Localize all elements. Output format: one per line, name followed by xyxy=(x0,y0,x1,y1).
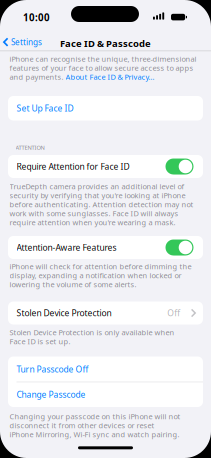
staticText: lowering the volume of some alerts. xyxy=(9,279,136,289)
button[interactable]: Require Attention for Face ID xyxy=(165,158,193,174)
staticText: features of your face to allow secure ac… xyxy=(9,63,193,73)
staticText: work with some sunglasses. Face ID will … xyxy=(9,208,178,218)
staticText: Change Passcode xyxy=(16,389,85,400)
staticText: before authenticating. Attention detecti… xyxy=(9,199,193,209)
staticText: Face ID is set up. xyxy=(9,336,70,346)
staticText: About Face ID & Privacy... xyxy=(65,72,154,82)
staticText: iPhone can recognise the unique, three-d… xyxy=(9,54,196,64)
staticText: Require Attention for Face ID xyxy=(16,161,129,172)
button[interactable]: Attention-Aware Features xyxy=(165,239,193,255)
staticText: Face ID & Passcode xyxy=(60,37,151,50)
staticText: Changing your passcode on this iPhone wi… xyxy=(9,411,180,421)
button[interactable]: Back to Settings xyxy=(3,37,42,47)
button[interactable]: Stolen Device Protection xyxy=(8,301,203,324)
staticText: display, expanding a notification when l… xyxy=(9,270,181,280)
staticText: disconnect it from other devices or rese… xyxy=(9,420,154,430)
staticText: ATTENTION xyxy=(15,144,44,151)
staticText: Settings xyxy=(11,37,42,47)
button[interactable]: Set Up Face ID xyxy=(8,96,203,120)
staticText: Set Up Face ID xyxy=(16,103,73,114)
staticText: Turn Passcode Off xyxy=(16,363,88,375)
staticText: security by verifying that you're lookin… xyxy=(9,190,185,200)
staticText: Stolen Device Protection xyxy=(16,307,111,319)
button[interactable]: Change Passcode xyxy=(8,382,203,407)
button[interactable]: About Face ID & Privacy... xyxy=(65,72,154,82)
staticText: require attention when you're wearing a … xyxy=(9,217,175,227)
staticText: 10:00 xyxy=(23,11,50,24)
staticText: iPhone will check for attention before d… xyxy=(9,261,191,271)
staticText: Stolen Device Protection is only availab… xyxy=(9,327,174,337)
button[interactable]: Turn Passcode Off xyxy=(8,356,203,382)
staticText: iPhone Mirroring, Wi-Fi sync and watch p… xyxy=(9,429,179,439)
staticText: Off xyxy=(167,307,180,319)
staticText: TrueDepth camera provides an additional … xyxy=(9,181,184,191)
staticText: Attention-Aware Features xyxy=(16,242,116,253)
staticText: and payments. xyxy=(9,72,65,82)
